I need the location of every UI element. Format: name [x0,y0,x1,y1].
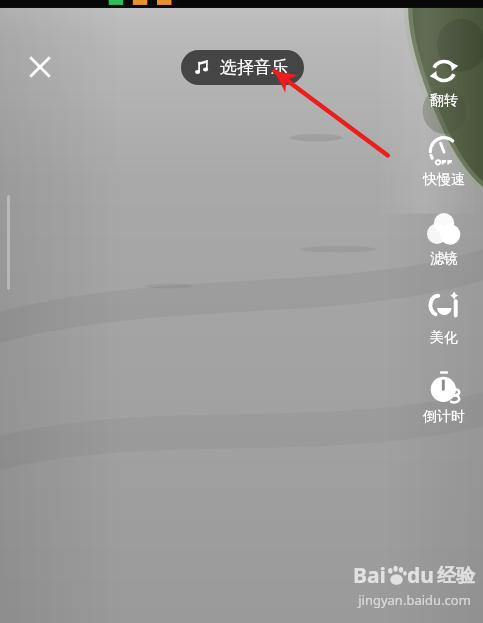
staticText: Bai [353,561,386,590]
button[interactable]: 快慢速 [410,131,478,203]
staticText: 经验 [437,564,475,588]
staticText: 滤镜 [430,250,458,268]
button[interactable]: 翻转 [410,52,478,124]
button[interactable]: 选择音乐 [181,50,304,85]
staticText: jingyan.baidu.com [358,591,471,609]
button[interactable]: 倒计时 [410,368,478,440]
staticText: 快慢速 [423,171,465,189]
staticText: 美化 [430,329,458,347]
button[interactable]: 美化 [410,289,478,361]
staticText: 翻转 [430,92,458,110]
staticText: du [407,561,434,590]
staticText: 倒计时 [423,408,465,426]
button[interactable]: 滤镜 [410,210,478,282]
button[interactable]: 关闭 [16,43,64,91]
staticText: 选择音乐 [220,57,288,78]
